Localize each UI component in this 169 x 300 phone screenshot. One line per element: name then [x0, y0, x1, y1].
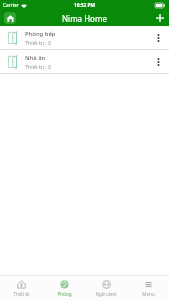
- button[interactable]: Menu: [127, 276, 169, 300]
- button[interactable]: More options: [147, 26, 169, 49]
- staticText: Thiết bị: [13, 291, 30, 297]
- button[interactable]: Thiết bị: [0, 276, 43, 300]
- button[interactable]: Nhà ăn: [0, 50, 169, 74]
- button[interactable]: Phòng: [43, 276, 85, 300]
- staticText: 10:52 PM: [74, 2, 96, 9]
- staticText: Nhà ăn: [25, 54, 46, 62]
- button[interactable]: Add room: [150, 10, 169, 26]
- staticText: Ngữ cảnh: [95, 291, 117, 297]
- staticText: Phòng: [57, 291, 72, 297]
- staticText: Nima Home: [62, 13, 107, 24]
- staticText: Phòng bếp: [25, 30, 56, 38]
- button[interactable]: Nima Home logo: [4, 12, 16, 24]
- staticText: Thiết bị : 0: [25, 63, 52, 70]
- button[interactable]: Ngữ cảnh: [85, 276, 127, 300]
- button[interactable]: Phòng bếp: [0, 26, 169, 50]
- staticText: Carrier: [3, 2, 19, 9]
- staticText: Thiết bị : 0: [25, 39, 52, 46]
- button[interactable]: More options: [147, 50, 169, 73]
- staticText: Menu: [142, 291, 155, 297]
